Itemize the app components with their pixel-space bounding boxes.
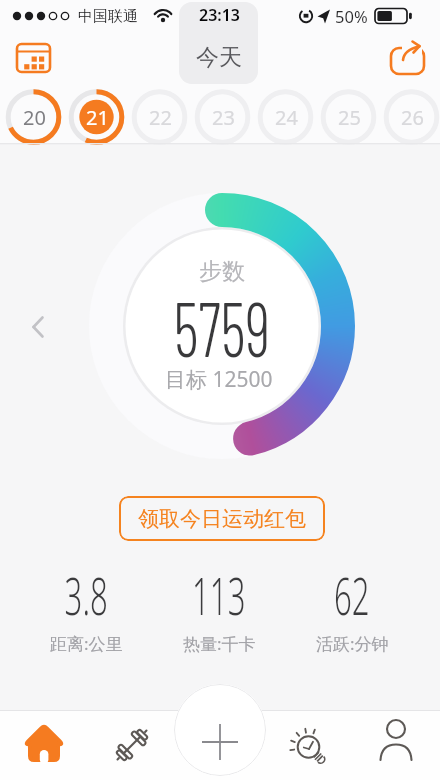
button[interactable]: 24	[258, 102, 314, 132]
staticText: 领取今日运动红包	[138, 506, 306, 532]
button[interactable]: 20	[6, 102, 62, 132]
staticText: 5759	[173, 280, 271, 372]
staticText: 26	[401, 104, 424, 131]
button[interactable]: 22	[132, 102, 188, 132]
staticText: 中国联通	[78, 7, 138, 26]
staticText: 3.8	[65, 559, 108, 623]
button[interactable]: 23	[195, 102, 251, 132]
staticText: 50%	[335, 5, 368, 27]
staticText: 22	[149, 104, 172, 131]
staticText: 活跃:分钟	[316, 632, 389, 655]
staticText: 距离:公里	[50, 632, 123, 655]
staticText: 24	[275, 104, 298, 131]
button[interactable]	[12, 714, 76, 776]
staticText: 25	[338, 104, 361, 131]
button[interactable]	[174, 684, 266, 776]
staticText: 目标 12500	[165, 365, 273, 394]
button[interactable]: 25	[321, 102, 377, 132]
staticText: 今天	[196, 43, 242, 72]
staticText: 热量:千卡	[183, 632, 256, 655]
staticText: 23	[212, 104, 235, 131]
staticText: 23:13	[199, 4, 241, 26]
button[interactable]	[383, 38, 431, 80]
staticText: 20	[23, 104, 46, 131]
staticText: 步数	[199, 257, 245, 286]
button[interactable]	[276, 714, 340, 776]
button[interactable]: 21	[69, 102, 125, 132]
staticText: 62	[334, 559, 370, 623]
button[interactable]	[364, 714, 428, 776]
button[interactable]	[188, 714, 252, 776]
button[interactable]: 26	[384, 102, 440, 132]
staticText: 21	[86, 104, 109, 131]
button[interactable]: 领取今日运动红包	[119, 496, 325, 541]
staticText: 113	[192, 559, 246, 623]
button[interactable]	[10, 38, 58, 80]
button[interactable]	[100, 714, 164, 776]
